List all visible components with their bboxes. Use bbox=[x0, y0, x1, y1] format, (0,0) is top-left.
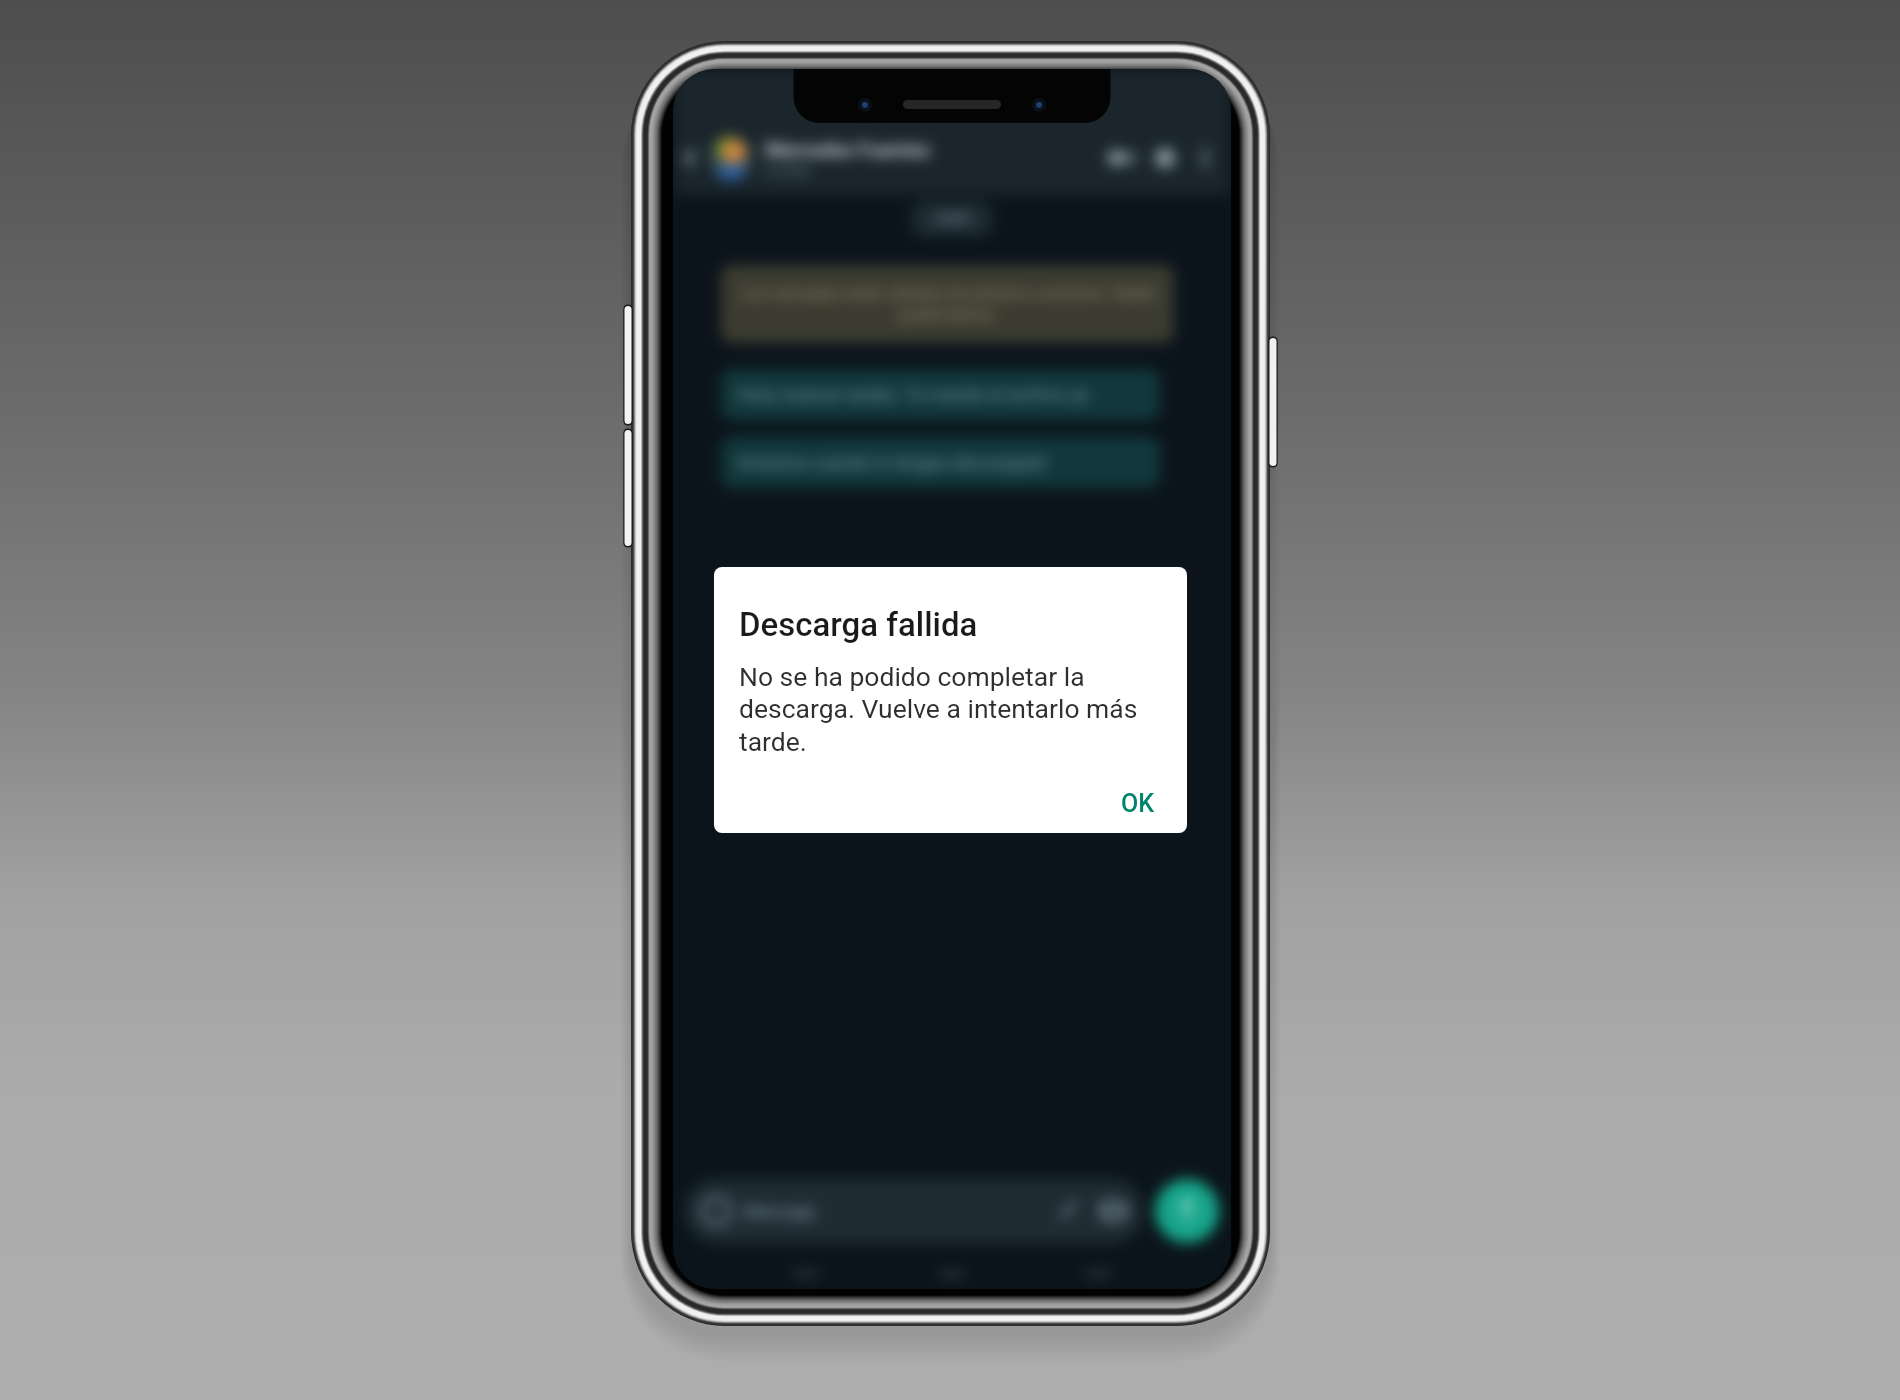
staticText: Descarga fallida bbox=[739, 605, 978, 644]
staticText: Mensaje bbox=[743, 1200, 815, 1222]
staticText: Avísame cuando lo tengas descargado bbox=[737, 452, 1047, 473]
button[interactable]: Foto de perfil de Mercedes Fuentes bbox=[709, 136, 753, 180]
button[interactable]: Más opciones bbox=[1187, 140, 1223, 176]
button[interactable]: Llamar bbox=[1143, 136, 1187, 180]
staticText: en línea bbox=[765, 163, 810, 178]
button[interactable]: Atrás bbox=[673, 121, 709, 195]
button[interactable]: Videollamada bbox=[1099, 136, 1143, 180]
staticText: Hola, buenas tardes. Te mando el archivo… bbox=[737, 384, 1089, 405]
staticText: OK bbox=[1121, 789, 1155, 818]
staticText: Mercedes Fuentes bbox=[765, 138, 930, 161]
staticText: No se ha podido completar la descarga. V… bbox=[739, 661, 1173, 758]
button[interactable]: Enviar mensaje de voz bbox=[1155, 1179, 1219, 1243]
button[interactable]: Mercedes Fuentes bbox=[765, 138, 1099, 178]
staticText: AYER bbox=[935, 211, 969, 227]
button[interactable]: OK bbox=[1101, 779, 1175, 828]
button[interactable]: Mensaje bbox=[685, 1179, 1143, 1243]
staticText: Los mensajes están cifrados de extremo a… bbox=[737, 284, 1158, 324]
